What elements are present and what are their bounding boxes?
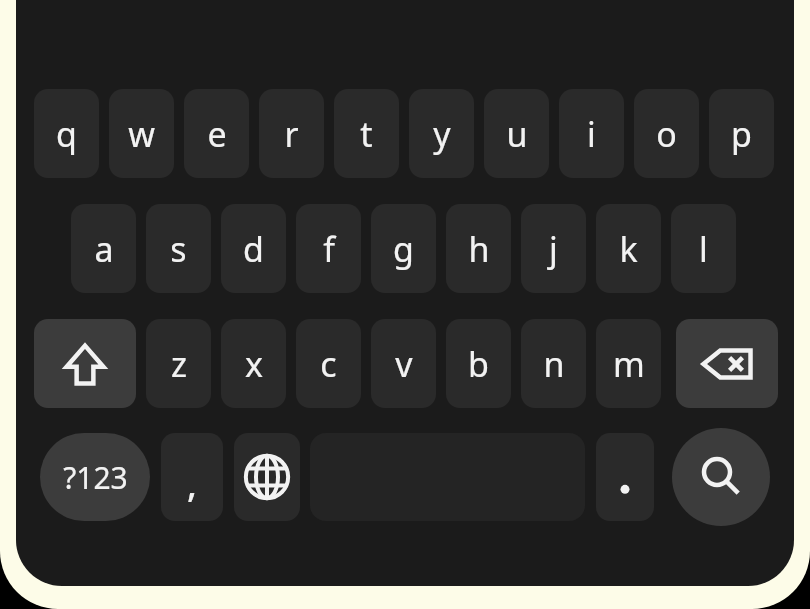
- staticText: o: [656, 111, 677, 157]
- button[interactable]: i: [559, 89, 624, 178]
- staticText: l: [699, 226, 708, 272]
- staticText: d: [243, 226, 264, 272]
- button[interactable]: a: [71, 204, 136, 293]
- staticText: a: [94, 226, 114, 272]
- staticText: m: [613, 341, 645, 387]
- button[interactable]: l: [671, 204, 736, 293]
- button[interactable]: x: [221, 319, 286, 408]
- staticText: z: [171, 341, 187, 387]
- staticText: ,: [187, 459, 197, 508]
- staticText: t: [360, 111, 373, 157]
- button[interactable]: p: [709, 89, 774, 178]
- button[interactable]: q: [34, 89, 99, 178]
- button[interactable]: Backspace: [676, 319, 778, 408]
- staticText: h: [468, 226, 490, 272]
- button[interactable]: Switch language: [234, 433, 300, 521]
- staticText: f: [323, 226, 335, 272]
- button[interactable]: y: [409, 89, 474, 178]
- button[interactable]: k: [596, 204, 661, 293]
- button[interactable]: ?123: [40, 433, 150, 521]
- staticText: r: [284, 111, 299, 157]
- staticText: s: [170, 226, 187, 272]
- staticText: ?123: [63, 457, 128, 498]
- staticText: b: [468, 341, 489, 387]
- staticText: u: [506, 111, 528, 157]
- button[interactable]: f: [296, 204, 361, 293]
- staticText: q: [56, 111, 77, 157]
- staticText: p: [731, 111, 752, 157]
- button[interactable]: r: [259, 89, 324, 178]
- button[interactable]: b: [446, 319, 511, 408]
- button[interactable]: o: [634, 89, 699, 178]
- button[interactable]: Shift: [34, 319, 136, 408]
- button[interactable]: d: [221, 204, 286, 293]
- button[interactable]: e: [184, 89, 249, 178]
- button[interactable]: z: [146, 319, 211, 408]
- staticText: g: [393, 226, 414, 272]
- button[interactable]: c: [296, 319, 361, 408]
- staticText: e: [207, 111, 227, 157]
- button[interactable]: s: [146, 204, 211, 293]
- staticText: c: [320, 341, 337, 387]
- staticText: n: [543, 341, 565, 387]
- staticText: j: [549, 226, 558, 272]
- button[interactable]: v: [371, 319, 436, 408]
- button[interactable]: h: [446, 204, 511, 293]
- button[interactable]: ,: [161, 433, 223, 521]
- button[interactable]: g: [371, 204, 436, 293]
- button[interactable]: Search: [672, 428, 770, 526]
- staticText: x: [245, 341, 263, 387]
- button[interactable]: j: [521, 204, 586, 293]
- staticText: y: [433, 111, 451, 157]
- button[interactable]: w: [109, 89, 174, 178]
- staticText: i: [587, 111, 596, 157]
- staticText: v: [395, 341, 413, 387]
- staticText: k: [619, 226, 638, 272]
- button[interactable]: m: [596, 319, 661, 408]
- button[interactable]: [596, 433, 654, 521]
- button[interactable]: t: [334, 89, 399, 178]
- staticText: w: [128, 111, 155, 157]
- button[interactable]: n: [521, 319, 586, 408]
- button[interactable]: u: [484, 89, 549, 178]
